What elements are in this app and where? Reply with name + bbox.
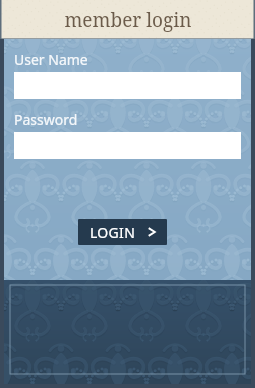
staticText: member login xyxy=(64,7,192,33)
staticText: User Name xyxy=(14,50,88,69)
staticText: Password xyxy=(14,110,78,129)
button[interactable]: LOGIN xyxy=(78,219,167,245)
staticText: LOGIN xyxy=(90,223,136,242)
